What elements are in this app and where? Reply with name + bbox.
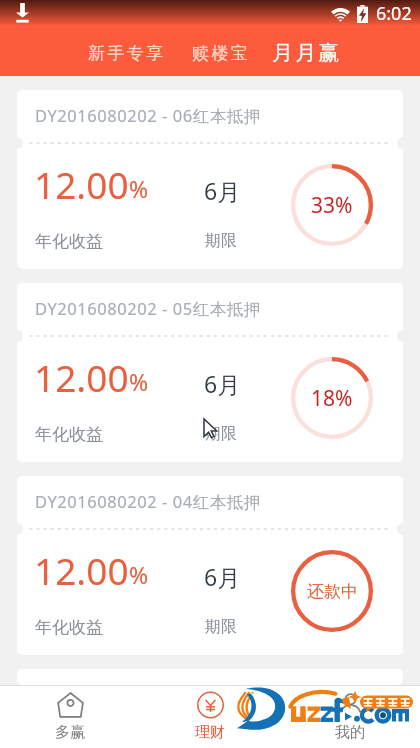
button[interactable]: 我的: [280, 686, 420, 748]
other: Battery charging: [357, 5, 368, 23]
button[interactable]: 多赢: [0, 686, 140, 748]
staticText: 6:02: [376, 1, 412, 26]
button[interactable]: 新手专享: [78, 36, 176, 71]
staticText: 还款中: [307, 581, 358, 602]
staticText: 12.00: [34, 159, 129, 209]
button[interactable]: DY2016080202 - 05红本抵押: [17, 283, 403, 462]
button[interactable]: DY2016080202 - 04红本抵押: [17, 476, 403, 655]
staticText: 12.00: [34, 545, 129, 595]
staticText: DY2016080202 - 05红本抵押: [35, 297, 261, 320]
staticText: 理财: [195, 723, 225, 742]
staticText: 新手专享: [88, 43, 166, 64]
staticText: 年化收益: [35, 424, 103, 445]
button[interactable]: DY2016080202 - 06红本抵押: [17, 90, 403, 269]
staticText: 12.00: [34, 352, 129, 402]
staticText: 期限: [205, 617, 237, 637]
staticText: 期限: [205, 424, 237, 444]
staticText: 期限: [205, 231, 237, 251]
staticText: 6月: [204, 175, 241, 206]
staticText: 多赢: [55, 723, 85, 742]
button[interactable]: 月月赢: [262, 33, 352, 73]
staticText: DY2016080202 - 04红本抵押: [35, 490, 261, 513]
staticText: 年化收益: [35, 617, 103, 638]
staticText: 18%: [311, 384, 353, 413]
staticText: 赎楼宝: [192, 43, 251, 64]
button[interactable]: 理财: [140, 686, 280, 748]
staticText: DY2016080202 - 06红本抵押: [35, 104, 261, 127]
staticText: 33%: [311, 191, 353, 220]
staticText: %: [129, 173, 149, 204]
staticText: 6月: [204, 561, 241, 592]
staticText: 月月赢: [272, 40, 342, 66]
staticText: 年化收益: [35, 231, 103, 252]
staticText: %: [129, 366, 149, 397]
button[interactable]: 赎楼宝: [182, 36, 261, 71]
staticText: 6月: [204, 368, 241, 399]
staticText: 我的: [335, 723, 365, 742]
other: WiFi signal: [331, 6, 350, 22]
other: Download: [16, 3, 29, 23]
staticText: %: [129, 559, 149, 590]
